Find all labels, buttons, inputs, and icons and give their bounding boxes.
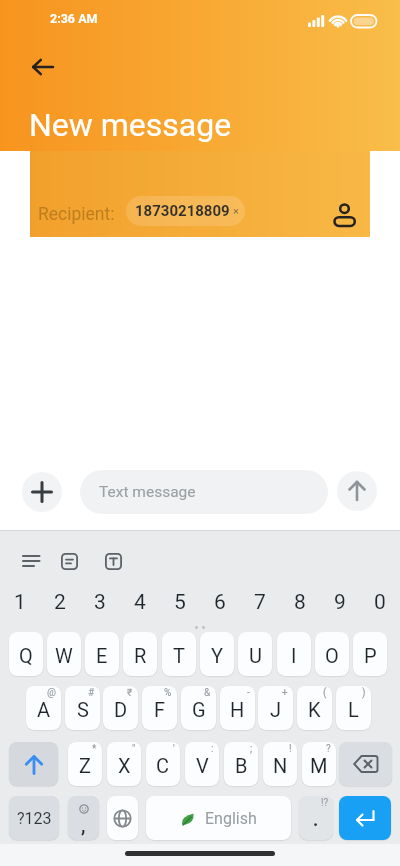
staticText: '	[173, 743, 175, 755]
staticText: W	[55, 644, 73, 667]
staticText: G	[192, 698, 206, 721]
button[interactable]	[326, 192, 364, 234]
button[interactable]: 5	[160, 588, 200, 616]
button[interactable]: 0	[360, 588, 400, 616]
button[interactable]: R	[123, 632, 157, 676]
staticText: @	[47, 687, 56, 699]
staticText: 5	[174, 590, 186, 615]
staticText: ;	[250, 743, 253, 755]
staticText: P	[364, 644, 377, 667]
staticText: ?123	[17, 809, 52, 828]
staticText: L	[348, 698, 359, 721]
button[interactable]: D	[103, 686, 138, 730]
staticText: (	[323, 687, 327, 699]
staticText: C	[156, 754, 170, 777]
staticText: ₹	[127, 687, 133, 699]
button[interactable]	[21, 49, 65, 85]
button[interactable]: K	[297, 686, 332, 730]
button[interactable]: Z	[68, 742, 102, 786]
button[interactable]: S	[65, 686, 100, 730]
button[interactable]	[14, 545, 48, 577]
button[interactable]	[9, 742, 58, 786]
staticText: 8	[294, 590, 306, 615]
button[interactable]: L	[336, 686, 371, 730]
button[interactable]: Q	[9, 632, 43, 676]
staticText: Z	[79, 754, 91, 777]
button[interactable]: 18730218809	[126, 196, 245, 226]
staticText: ,	[81, 813, 86, 836]
staticText: 2:36 AM	[50, 11, 98, 26]
button[interactable]: U	[238, 632, 272, 676]
staticText: O	[325, 644, 339, 667]
button[interactable]: X	[107, 742, 141, 786]
button[interactable]: T	[162, 632, 196, 676]
button[interactable]: 6	[200, 588, 240, 616]
button[interactable]: 1	[0, 588, 40, 616]
staticText: K	[308, 698, 321, 721]
staticText: "	[132, 743, 136, 755]
button[interactable]: M	[302, 742, 336, 786]
staticText: ×	[233, 205, 239, 218]
staticText: %	[164, 687, 172, 699]
staticText: M	[310, 754, 328, 777]
staticText: Q	[19, 644, 33, 667]
button[interactable]: C	[146, 742, 180, 786]
button[interactable]: B	[224, 742, 258, 786]
staticText: I	[291, 644, 297, 667]
staticText: Text message	[99, 483, 196, 501]
staticText: 4	[134, 590, 146, 615]
button[interactable]: I	[277, 632, 311, 676]
staticText: F	[154, 698, 166, 721]
staticText: Recipient:	[38, 204, 115, 225]
staticText: N	[273, 754, 288, 777]
staticText: .	[313, 809, 319, 830]
button[interactable]	[96, 545, 130, 577]
button[interactable]: V	[185, 742, 219, 786]
button[interactable]: ?123	[9, 796, 59, 840]
button[interactable]: H	[220, 686, 255, 730]
staticText: -	[247, 687, 250, 699]
button[interactable]: ,	[68, 796, 99, 840]
button[interactable]: 3	[80, 588, 120, 616]
button[interactable]: A	[26, 686, 61, 730]
button[interactable]: Y	[200, 632, 234, 676]
staticText: &	[204, 687, 211, 699]
staticText: ?	[326, 743, 331, 755]
staticText: 18730218809	[135, 202, 230, 220]
button[interactable]: 8	[280, 588, 320, 616]
staticText: !	[289, 743, 292, 755]
button[interactable]: O	[315, 632, 349, 676]
button[interactable]: G	[181, 686, 216, 730]
staticText: 6	[214, 590, 226, 615]
button[interactable]: 2	[40, 588, 80, 616]
staticText: )	[362, 687, 366, 699]
staticText: !?	[321, 797, 329, 809]
staticText: 0	[374, 590, 386, 615]
staticText: :	[211, 743, 214, 755]
staticText: 3	[94, 590, 106, 615]
staticText: X	[118, 754, 131, 777]
button[interactable]: J	[258, 686, 293, 730]
button[interactable]: N	[263, 742, 297, 786]
staticText: U	[249, 644, 262, 667]
button[interactable]	[339, 796, 391, 840]
button[interactable]	[107, 796, 138, 840]
staticText: English	[205, 809, 257, 828]
button[interactable]	[337, 471, 377, 511]
button[interactable]: 4	[120, 588, 160, 616]
button[interactable]	[22, 472, 62, 512]
button[interactable]: English	[146, 796, 291, 840]
button[interactable]: W	[47, 632, 81, 676]
button[interactable]	[339, 742, 392, 786]
button[interactable]: 7	[240, 588, 280, 616]
button[interactable]: 9	[320, 588, 360, 616]
staticText: +	[282, 687, 288, 699]
staticText: 7	[254, 590, 266, 615]
button[interactable]: .	[299, 796, 333, 840]
button[interactable]: F	[142, 686, 177, 730]
button[interactable]: P	[353, 632, 387, 676]
button[interactable]: E	[85, 632, 119, 676]
staticText: E	[96, 644, 108, 667]
button[interactable]	[52, 545, 86, 577]
button[interactable]: Text message	[80, 470, 328, 514]
